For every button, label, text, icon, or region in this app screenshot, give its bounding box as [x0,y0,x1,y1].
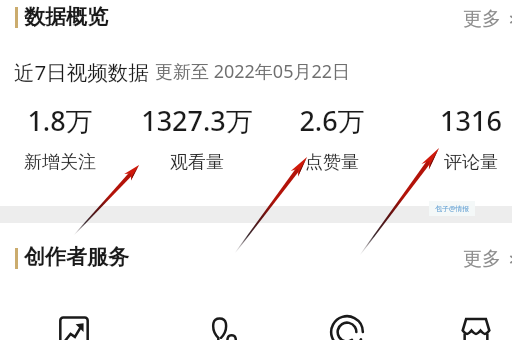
staticText: 1316 [440,102,502,139]
staticText: 新增关注 [24,151,96,174]
staticText: 2.6万 [299,102,365,139]
button[interactable]: 小店 [450,306,502,340]
staticText: 包子@情报 [435,204,470,214]
button[interactable]: 更多 [463,7,512,31]
staticText: 观看量 [170,151,224,174]
button[interactable]: 数据中心 [48,306,100,340]
staticText: 更多 [463,7,501,31]
button[interactable]: 粉丝管理 [195,306,247,340]
button[interactable]: 动态 [321,306,373,340]
staticText: 创作者服务 [24,244,129,270]
button[interactable]: 2.6万 [267,102,397,174]
staticText: 数据概览 [24,4,108,30]
staticText: 1327.3万 [141,102,253,139]
staticText: 点赞量 [305,151,359,174]
staticText: 评论量 [444,151,498,174]
button[interactable]: 更多 [463,247,512,271]
staticText: 更新至 2022年05月22日 [155,59,351,84]
staticText: 1.8万 [27,102,93,139]
staticText: 更多 [463,247,501,271]
button[interactable]: 1316 [406,102,512,174]
button[interactable]: 1327.3万 [132,102,262,174]
staticText: 近7日视频数据 [14,58,149,86]
button[interactable]: 1.8万 [0,102,125,174]
